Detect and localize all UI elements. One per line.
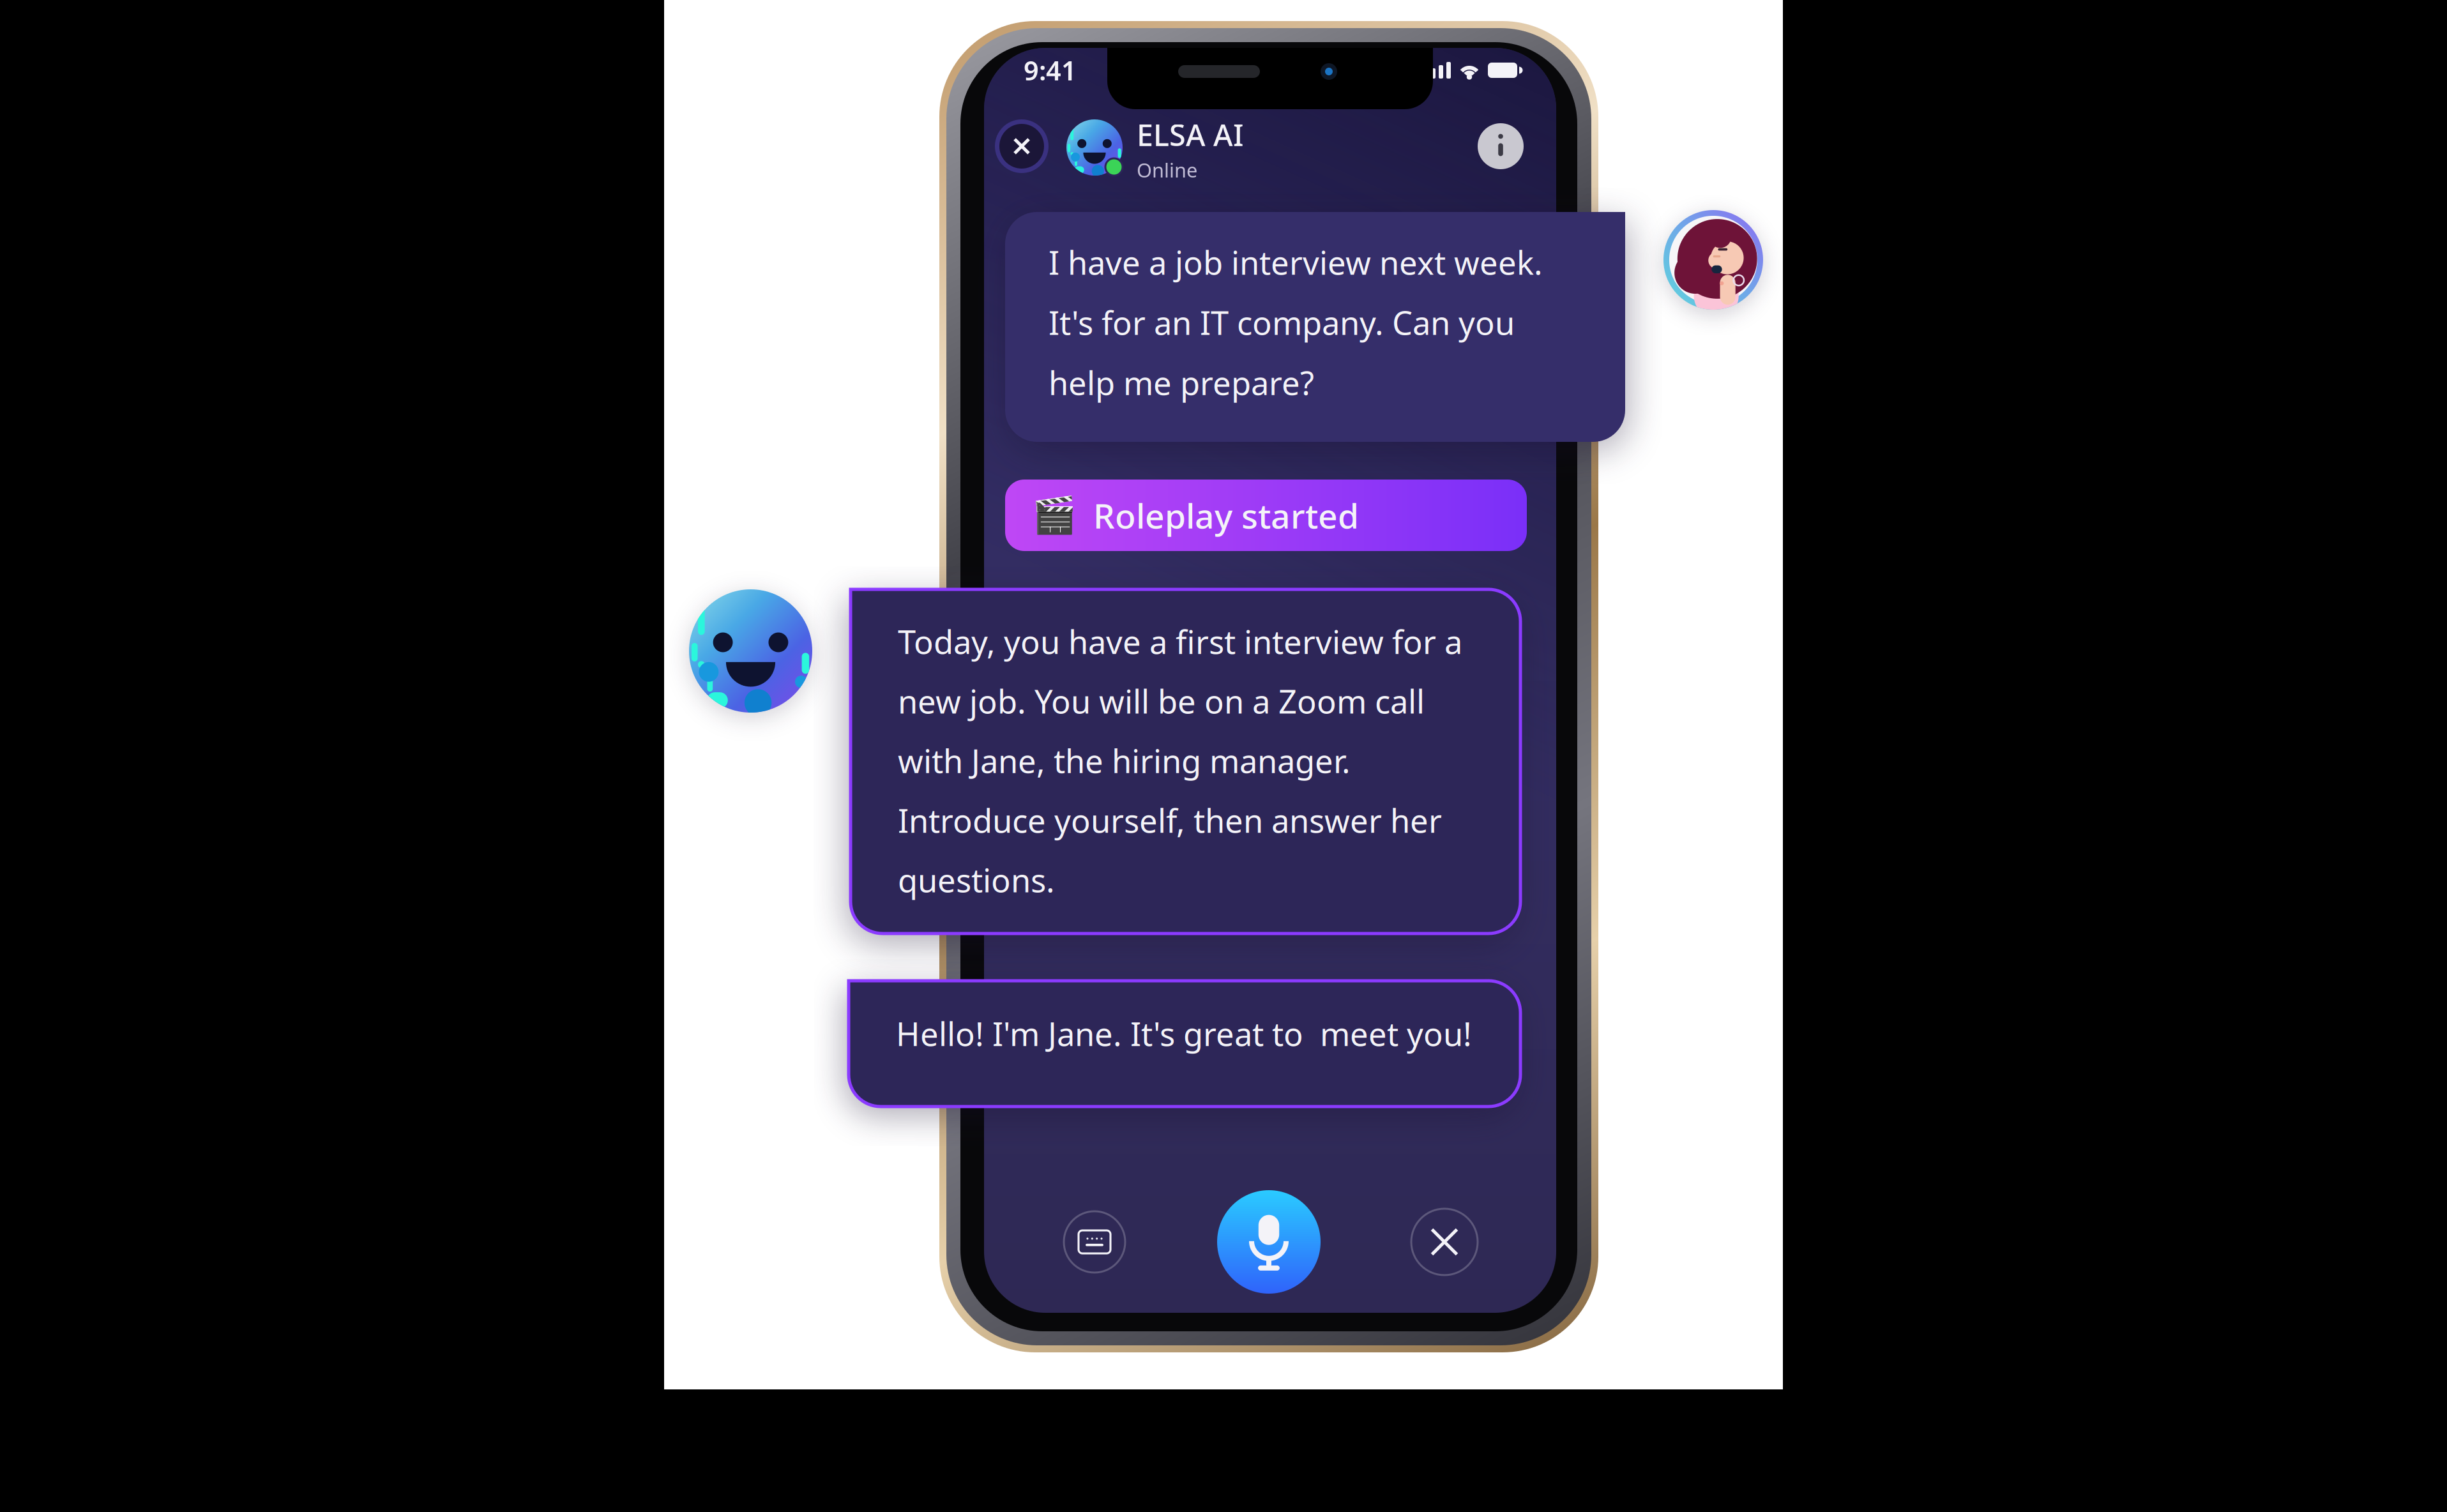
staticText: Roleplay started	[1093, 493, 1359, 538]
button[interactable]: End roleplay	[1411, 1209, 1478, 1275]
staticText: questions.	[898, 858, 1055, 901]
button[interactable]: Keyboard	[1064, 1211, 1125, 1273]
staticText: help me prepare?	[1049, 361, 1314, 404]
staticText: Introduce yourself, then answer her	[898, 799, 1442, 842]
staticText: with Jane, the hiring manager.	[898, 739, 1351, 782]
button[interactable]: Close	[995, 119, 1049, 173]
staticText: I have a job interview next week.	[1049, 241, 1543, 284]
staticText: Hello! I'm Jane. It's great to meet you!	[896, 1012, 1472, 1055]
button[interactable]: Hold to speak	[1217, 1190, 1321, 1294]
staticText: Online	[1137, 157, 1197, 183]
button[interactable]: Conversation info	[1478, 123, 1524, 169]
staticText: 🎬	[1032, 495, 1077, 536]
staticText: ELSA AI	[1137, 115, 1244, 154]
staticText: It's for an IT company. Can you	[1049, 301, 1515, 344]
staticText: new job. You will be on a Zoom call	[898, 680, 1425, 723]
button[interactable]: ELSA AI	[1066, 117, 1430, 181]
staticText: Today, you have a first interview for a	[898, 620, 1462, 663]
staticText: 9:41	[1024, 53, 1077, 88]
